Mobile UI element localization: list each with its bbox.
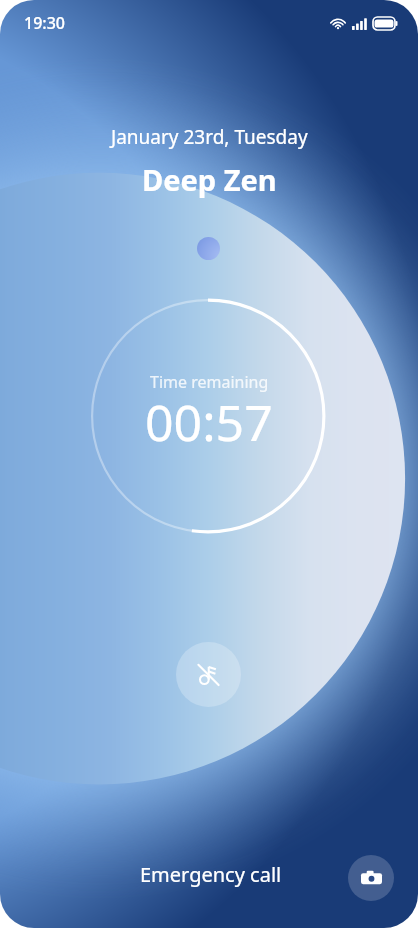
button[interactable]: Mute: [176, 642, 241, 707]
staticText: January 23rd, Tuesday: [111, 124, 308, 150]
button[interactable]: Camera: [348, 855, 394, 901]
staticText: 00:57: [145, 388, 273, 456]
staticText: Deep Zen: [142, 160, 277, 199]
staticText: Time remaining: [150, 371, 269, 393]
button[interactable]: Emergency call: [126, 855, 296, 894]
staticText: 19:30: [24, 12, 65, 34]
